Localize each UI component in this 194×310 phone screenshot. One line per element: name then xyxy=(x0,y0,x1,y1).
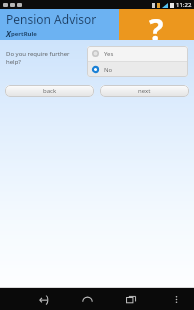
button[interactable]: No xyxy=(87,62,188,77)
staticText: X xyxy=(6,28,11,39)
staticText: next xyxy=(138,87,151,95)
button[interactable]: More options xyxy=(165,288,187,310)
button[interactable]: Home xyxy=(76,288,98,310)
staticText: back xyxy=(43,87,57,95)
staticText: Pension Advisor xyxy=(6,11,97,27)
staticText: No xyxy=(104,66,113,74)
button[interactable]: Recent apps xyxy=(120,288,142,310)
staticText: Do you require further help? xyxy=(6,50,83,66)
staticText: Yes xyxy=(104,50,114,58)
button[interactable]: Yes xyxy=(87,46,188,61)
button[interactable]: next xyxy=(100,85,189,97)
button[interactable]: Help xyxy=(119,9,194,40)
staticText: pertRule xyxy=(11,30,37,38)
staticText: ? xyxy=(149,9,164,40)
staticText: 11:22 xyxy=(176,1,192,9)
button[interactable]: Back xyxy=(32,288,54,310)
button[interactable]: back xyxy=(5,85,94,97)
